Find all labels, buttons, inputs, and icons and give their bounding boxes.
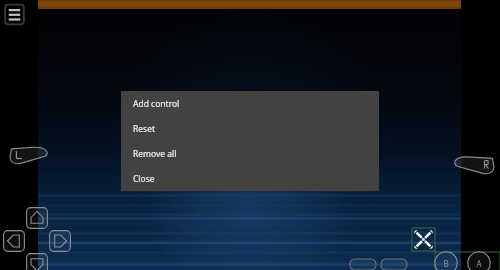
button[interactable]: Start xyxy=(381,259,407,270)
button[interactable]: D-pad right xyxy=(47,228,73,254)
button[interactable]: Close xyxy=(121,166,379,191)
button[interactable]: Select xyxy=(350,259,376,270)
button[interactable]: A xyxy=(465,249,493,270)
button[interactable]: B xyxy=(432,249,460,270)
staticText: Add control xyxy=(133,98,180,110)
button[interactable]: Remove all xyxy=(121,141,379,166)
button[interactable]: Reset xyxy=(121,116,379,141)
staticText: Close xyxy=(133,173,155,185)
staticText: A xyxy=(476,258,482,269)
staticText: Reset xyxy=(133,123,156,135)
button[interactable]: L button xyxy=(8,144,50,166)
button[interactable]: Menu xyxy=(2,2,28,28)
button[interactable]: D-pad down xyxy=(24,251,50,270)
staticText: B xyxy=(443,258,449,269)
button[interactable]: D-pad left xyxy=(1,228,27,254)
staticText: Remove all xyxy=(133,148,177,160)
button[interactable]: D-pad up xyxy=(24,205,50,231)
button[interactable]: Toggle fullscreen xyxy=(412,228,435,251)
button[interactable]: R button xyxy=(452,154,496,176)
button[interactable]: Add control xyxy=(121,91,379,116)
